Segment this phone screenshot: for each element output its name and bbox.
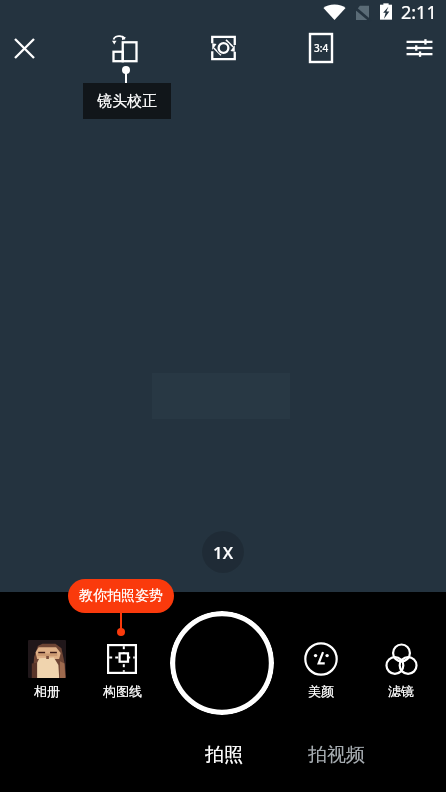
staticText: 2:11 bbox=[401, 0, 437, 22]
staticText: 1X bbox=[213, 541, 234, 564]
button[interactable]: 1X bbox=[202, 531, 244, 573]
staticText: 拍视频 bbox=[308, 743, 365, 767]
staticText: 滤镜 bbox=[388, 683, 414, 699]
button[interactable]: Close bbox=[0, 24, 48, 72]
button[interactable]: 拍照 bbox=[194, 739, 254, 771]
button[interactable]: 镜头校正 bbox=[83, 83, 171, 119]
button[interactable]: 相册 bbox=[11, 638, 83, 700]
button[interactable]: 构图线 bbox=[86, 638, 158, 700]
button[interactable]: 拍视频 bbox=[301, 739, 371, 771]
staticText: 美颜 bbox=[308, 683, 334, 699]
button[interactable]: 美颜 bbox=[285, 638, 357, 700]
staticText: 教你拍照姿势 bbox=[79, 587, 163, 605]
staticText: 相册 bbox=[34, 683, 60, 699]
button[interactable]: Switch camera bbox=[199, 24, 247, 72]
button[interactable]: 滤镜 bbox=[365, 638, 437, 700]
button[interactable]: Lens correction bbox=[100, 24, 148, 72]
button[interactable]: 教你拍照姿势 bbox=[68, 579, 174, 613]
staticText: 镜头校正 bbox=[97, 92, 157, 111]
staticText: 拍照 bbox=[205, 743, 243, 767]
button[interactable]: Settings bbox=[395, 24, 443, 72]
staticText: 构图线 bbox=[103, 683, 142, 699]
button[interactable]: Aspect ratio 3:4 bbox=[297, 24, 345, 72]
button[interactable]: Shutter bbox=[170, 611, 274, 715]
staticText: 3:4 bbox=[314, 41, 329, 55]
